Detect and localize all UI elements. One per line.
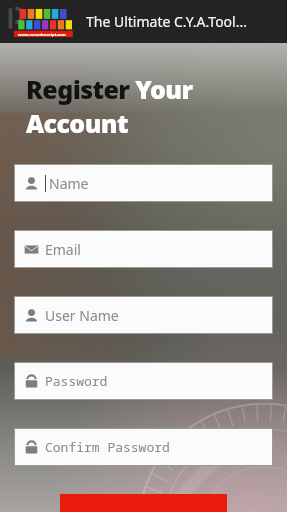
staticText: Password xyxy=(45,372,108,390)
staticText: www.recordreceipt.com xyxy=(18,32,66,37)
staticText: The Ultimate C.Y.A.Tool... xyxy=(86,12,247,31)
button[interactable]: Name xyxy=(15,165,272,201)
staticText: Confirm Password xyxy=(45,438,170,456)
staticText: User Name xyxy=(45,306,119,325)
staticText: Register Your Account xyxy=(26,72,287,140)
button[interactable]: Password xyxy=(15,363,272,399)
staticText: Name xyxy=(49,174,89,193)
staticText: Email xyxy=(45,240,81,259)
button[interactable]: Email xyxy=(15,231,272,267)
button[interactable]: Confirm Password xyxy=(15,429,272,465)
button[interactable]: User Name xyxy=(15,297,272,333)
